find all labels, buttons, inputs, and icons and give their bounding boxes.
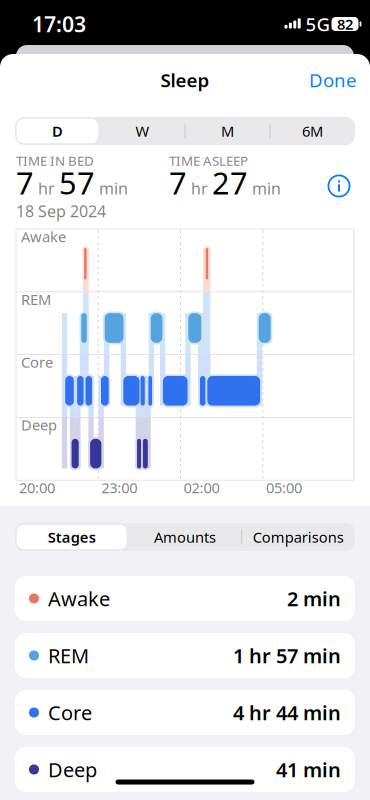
staticText: Done: [309, 68, 357, 92]
staticText: 02:00: [184, 478, 220, 497]
button[interactable]: D: [15, 117, 100, 145]
staticText: 2 min: [287, 585, 341, 612]
staticText: Sleep: [160, 68, 209, 92]
staticText: 7: [169, 162, 187, 203]
button[interactable]: REM: [15, 633, 355, 678]
button[interactable]: Comparisons: [242, 523, 355, 551]
staticText: Stages: [48, 527, 96, 547]
staticText: TIME ASLEEP: [169, 152, 248, 169]
staticText: 41 min: [276, 756, 341, 783]
staticText: min: [248, 178, 281, 199]
staticText: TIME IN BED: [16, 152, 94, 169]
staticText: Deep: [21, 415, 57, 435]
button[interactable]: Information: [321, 168, 357, 204]
button[interactable]: Awake: [15, 576, 355, 621]
staticText: 57: [59, 162, 95, 203]
button[interactable]: Amounts: [128, 523, 242, 551]
staticText: Amounts: [154, 527, 216, 547]
staticText: Core: [48, 699, 92, 726]
staticText: hr: [187, 178, 212, 199]
button[interactable]: Stages: [15, 523, 128, 551]
staticText: 05:00: [266, 478, 302, 497]
staticText: REM: [48, 642, 89, 669]
staticText: 4 hr 44 min: [233, 699, 341, 726]
staticText: Core: [21, 352, 53, 372]
staticText: M: [221, 121, 234, 141]
button[interactable]: Core: [15, 690, 355, 735]
staticText: 6M: [302, 121, 323, 141]
staticText: 7: [16, 162, 34, 203]
button[interactable]: 6M: [270, 117, 355, 145]
staticText: min: [95, 178, 128, 199]
staticText: Awake: [21, 227, 66, 246]
button[interactable]: Done: [297, 62, 357, 98]
button[interactable]: M: [185, 117, 270, 145]
staticText: Awake: [48, 585, 110, 612]
button[interactable]: W: [100, 117, 185, 145]
staticText: W: [135, 121, 149, 141]
staticText: 17:03: [32, 10, 86, 38]
staticText: 18 Sep 2024: [16, 200, 106, 222]
staticText: 23:00: [101, 478, 137, 497]
staticText: 82: [337, 14, 353, 34]
staticText: Deep: [48, 756, 97, 783]
staticText: 20:00: [19, 478, 55, 497]
staticText: Comparisons: [253, 527, 344, 547]
staticText: D: [52, 121, 63, 141]
staticText: REM: [21, 290, 51, 309]
staticText: hr: [34, 178, 59, 199]
staticText: 1 hr 57 min: [233, 642, 341, 669]
staticText: 27: [212, 162, 248, 203]
staticText: 5G: [305, 12, 330, 36]
button[interactable]: Deep: [15, 747, 355, 792]
